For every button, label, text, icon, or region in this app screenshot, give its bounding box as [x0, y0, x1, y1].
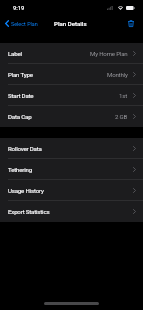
- staticText: Plan Details: [54, 20, 87, 27]
- staticText: 2 GB: [115, 113, 128, 120]
- button[interactable]: Label: [0, 43, 143, 64]
- staticText: Usage History: [8, 187, 44, 194]
- staticText: Tethering: [8, 166, 32, 173]
- staticText: Select Plan: [11, 21, 38, 27]
- button[interactable]: Data Cap: [0, 106, 143, 127]
- button[interactable]: Tethering: [0, 159, 143, 180]
- staticText: Label: [8, 50, 22, 57]
- button[interactable]: Export Statistics: [0, 201, 143, 222]
- button[interactable]: Plan Type: [0, 64, 143, 85]
- staticText: Rollover Data: [8, 145, 42, 152]
- staticText: 9:19: [13, 5, 25, 12]
- button[interactable]: Rollover Data: [0, 138, 143, 159]
- staticText: Monthly: [107, 71, 128, 78]
- staticText: Plan Type: [8, 71, 33, 78]
- staticText: Start Date: [8, 92, 34, 99]
- staticText: Data Cap: [8, 113, 32, 120]
- staticText: Export Statistics: [8, 208, 50, 215]
- button[interactable]: Start Date: [0, 85, 143, 106]
- button[interactable]: Usage History: [0, 180, 143, 201]
- button[interactable]: Select Plan: [0, 17, 42, 30]
- button[interactable]: Delete plan: [125, 18, 136, 29]
- staticText: My Home Plan: [90, 50, 128, 57]
- staticText: 1st: [119, 92, 128, 99]
